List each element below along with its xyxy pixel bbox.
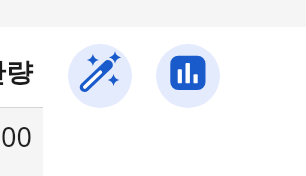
staticText: 1,200	[0, 118, 33, 155]
button[interactable]: AI 추천	[68, 44, 132, 108]
staticText: 생산량	[0, 56, 33, 90]
button[interactable]: 통계 보기	[156, 44, 220, 108]
